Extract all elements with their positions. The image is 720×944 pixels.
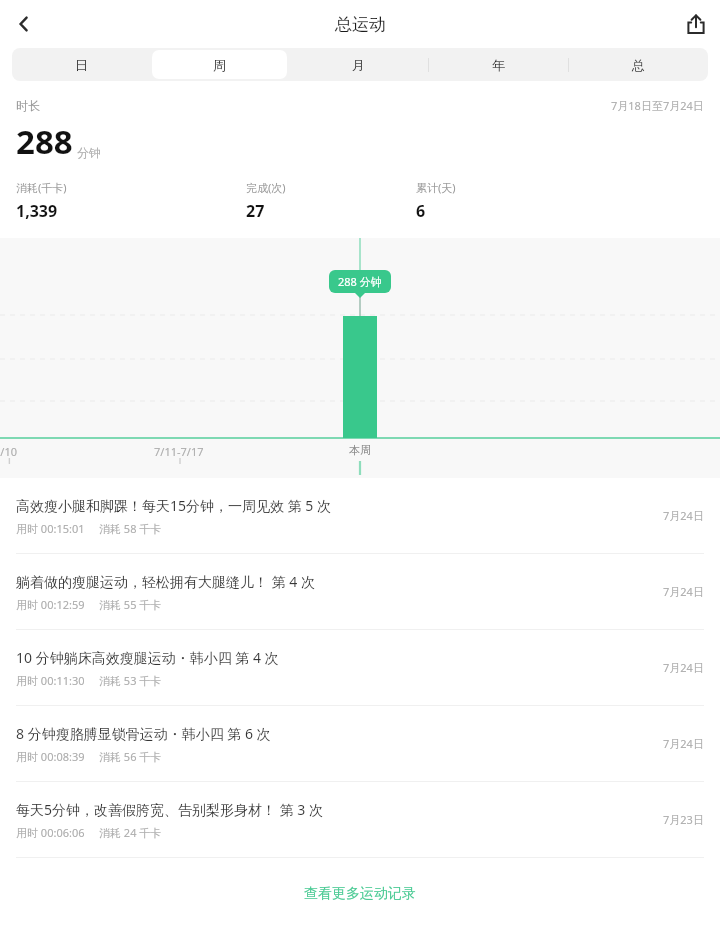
button[interactable]: 查看更多运动记录 (0, 885, 720, 903)
staticText: 每天5分钟，改善假胯宽、告别梨形身材！ 第 3 次 (16, 800, 323, 819)
staticText: 累计(天) (416, 180, 456, 195)
staticText: 7/10 (0, 444, 17, 459)
button[interactable]: 月 (291, 50, 426, 79)
button[interactable]: 年 (431, 50, 566, 79)
button[interactable]: Back (0, 0, 48, 48)
staticText: 用时 00:12:59 (16, 597, 85, 612)
staticText: 日 (75, 57, 88, 73)
staticText: 消耗 55 千卡 (99, 597, 162, 612)
staticText: 分钟 (77, 145, 101, 160)
staticText: 消耗 56 千卡 (99, 749, 162, 764)
button[interactable]: 总 (571, 50, 706, 79)
staticText: 时长 (16, 98, 40, 113)
staticText: 288 (16, 119, 73, 164)
staticText: 消耗 24 千卡 (99, 825, 162, 840)
staticText: 6 (416, 200, 426, 222)
staticText: 躺着做的瘦腿运动，轻松拥有大腿缝儿！ 第 4 次 (16, 572, 315, 591)
button[interactable]: 10 分钟躺床高效瘦腿运动・韩小四 第 4 次 (0, 630, 720, 705)
staticText: 7/11-7/17 (154, 444, 204, 459)
staticText: 周 (213, 57, 226, 73)
button[interactable]: Share (672, 0, 720, 48)
button[interactable]: 躺着做的瘦腿运动，轻松拥有大腿缝儿！ 第 4 次 (0, 554, 720, 629)
staticText: 288 分钟 (338, 274, 382, 289)
staticText: 7月18日至7月24日 (611, 98, 704, 113)
staticText: 高效瘦小腿和脚踝！每天15分钟，一周见效 第 5 次 (16, 496, 331, 515)
staticText: 消耗 58 千卡 (99, 521, 162, 536)
staticText: 用时 00:15:01 (16, 521, 85, 536)
staticText: 7月24日 (663, 508, 704, 523)
staticText: 8 分钟瘦胳膊显锁骨运动・韩小四 第 6 次 (16, 724, 271, 743)
button[interactable]: 高效瘦小腿和脚踝！每天15分钟，一周见效 第 5 次 (0, 478, 720, 553)
staticText: 月 (352, 57, 365, 73)
button[interactable]: 每天5分钟，改善假胯宽、告别梨形身材！ 第 3 次 (0, 782, 720, 857)
button[interactable]: 日 (14, 50, 148, 79)
staticText: 7月24日 (663, 660, 704, 675)
button[interactable]: 周 (152, 50, 287, 79)
staticText: 消耗 53 千卡 (99, 673, 162, 688)
staticText: 用时 00:08:39 (16, 749, 85, 764)
staticText: 本周 (349, 443, 371, 457)
staticText: 总 (632, 57, 645, 73)
staticText: 7月24日 (663, 736, 704, 751)
staticText: 总运动 (335, 14, 386, 35)
staticText: 7月23日 (663, 812, 704, 827)
staticText: 用时 00:11:30 (16, 673, 85, 688)
staticText: 完成(次) (246, 180, 286, 195)
staticText: 1,339 (16, 200, 58, 222)
staticText: 查看更多运动记录 (304, 885, 416, 903)
staticText: 27 (246, 200, 265, 222)
staticText: 年 (492, 57, 505, 73)
staticText: 7月24日 (663, 584, 704, 599)
button[interactable]: 8 分钟瘦胳膊显锁骨运动・韩小四 第 6 次 (0, 706, 720, 781)
staticText: 消耗(千卡) (16, 180, 67, 195)
staticText: 用时 00:06:06 (16, 825, 85, 840)
staticText: 10 分钟躺床高效瘦腿运动・韩小四 第 4 次 (16, 648, 279, 667)
